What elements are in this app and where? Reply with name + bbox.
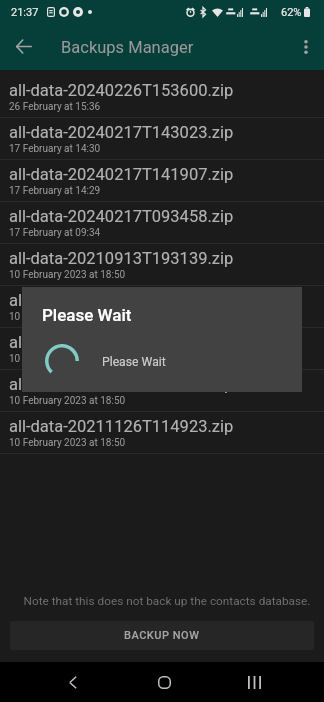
staticText: all-data-20240217T141907.zip [9, 165, 234, 184]
staticText: 10 February 2023 at 18:50 [9, 395, 126, 407]
button[interactable]: Home [144, 662, 184, 702]
staticText: Please Wait [102, 355, 166, 369]
staticText: all-data-20211126T114924.zip [9, 375, 234, 394]
staticText: 62% [281, 6, 302, 19]
staticText: 10 February 2023 at 18:50 [9, 311, 126, 323]
button[interactable]: More options [287, 25, 324, 69]
staticText: 10 February 2023 at 18:50 [9, 437, 126, 449]
staticText: 17 February at 14:29 [9, 185, 101, 197]
staticText: Please Wait [42, 305, 132, 325]
staticText: all-data-20211126T114926.zip [9, 291, 234, 310]
staticText: all-data-20240226T153600.zip [9, 81, 234, 100]
button[interactable]: Recent apps [234, 662, 274, 702]
button[interactable]: BACKUP NOW [10, 621, 314, 650]
button[interactable]: Back [53, 662, 93, 702]
staticText: BACKUP NOW [124, 629, 200, 642]
button[interactable]: all-data-20240217T143023.zip [0, 118, 324, 160]
staticText: 26 February at 15:36 [9, 101, 101, 113]
staticText: 17 February at 09:34 [9, 227, 101, 239]
button[interactable]: all-data-20240217T093458.zip [0, 202, 324, 244]
staticText: all-data-20211126T114923.zip [9, 417, 234, 436]
button[interactable]: all-data-20210913T193139.zip [0, 244, 324, 286]
button[interactable]: all-data-20211126T114925.zip [0, 328, 324, 370]
staticText: all-data-20210913T193139.zip [9, 249, 234, 268]
staticText: all-data-20211126T114925.zip [9, 333, 234, 352]
button[interactable]: all-data-20240217T141907.zip [0, 160, 324, 202]
staticText: Backups Manager [61, 38, 194, 57]
staticText: 10 February 2023 at 18:50 [9, 353, 126, 365]
staticText: all-data-20240217T143023.zip [9, 123, 234, 142]
button[interactable]: all-data-20211126T114926.zip [0, 286, 324, 328]
button[interactable]: all-data-20240226T153600.zip [0, 76, 324, 118]
button[interactable]: all-data-20211126T114924.zip [0, 370, 324, 412]
staticText: all-data-20240217T093458.zip [9, 207, 234, 226]
staticText: 17 February at 14:30 [9, 143, 101, 155]
staticText: Note that this does not back up the cont… [20, 594, 314, 608]
staticText: 10 February 2023 at 18:50 [9, 269, 126, 281]
button[interactable]: all-data-20211126T114923.zip [0, 412, 324, 454]
staticText: 21:37 [11, 6, 39, 19]
button[interactable]: Navigate up [2, 24, 46, 68]
